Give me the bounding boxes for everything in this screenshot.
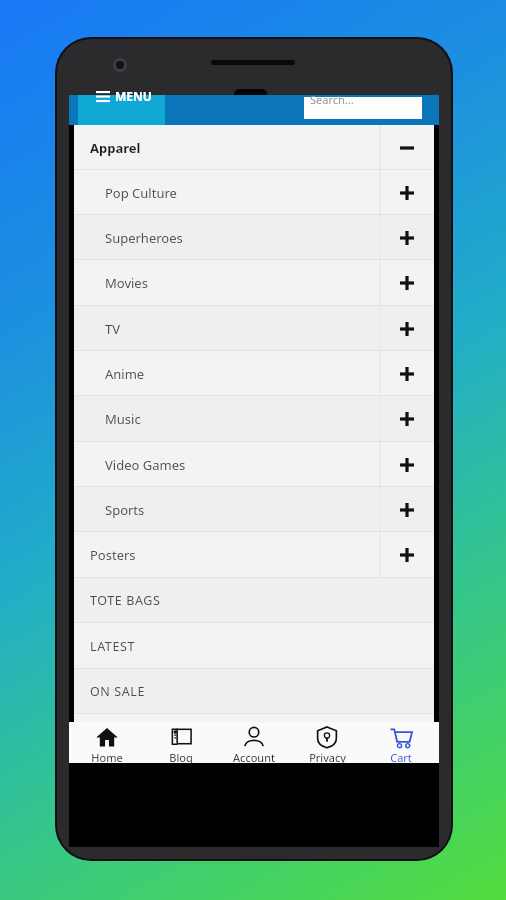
staticText: Posters <box>90 546 136 564</box>
button[interactable]: Expand Music <box>379 396 434 442</box>
button[interactable]: Privacy <box>292 722 362 763</box>
button[interactable]: Music <box>74 396 434 442</box>
staticText: Sports <box>105 501 145 519</box>
button[interactable]: Expand Anime <box>379 351 434 396</box>
staticText: TV <box>105 320 121 338</box>
button[interactable]: Expand Movies <box>379 260 434 306</box>
button[interactable]: Sports <box>74 487 434 532</box>
staticText: Cart <box>390 750 412 763</box>
staticText: TOTE BAGS <box>90 592 161 609</box>
button[interactable]: Expand Pop Culture <box>379 170 434 215</box>
button[interactable]: Anime <box>74 351 434 396</box>
button[interactable]: LATEST <box>74 623 434 669</box>
staticText: LATEST <box>90 638 135 655</box>
button[interactable]: Blog <box>146 722 216 763</box>
staticText: Privacy <box>309 750 346 763</box>
staticText: Blog <box>169 750 193 763</box>
button[interactable]: Superheroes <box>74 215 434 260</box>
staticText: Video Games <box>105 456 186 474</box>
button[interactable]: Expand TV <box>379 306 434 351</box>
button[interactable]: Expand Superheroes <box>379 215 434 260</box>
button[interactable]: Account <box>219 722 289 763</box>
button[interactable]: TV <box>74 306 434 351</box>
staticText: Anime <box>105 365 145 383</box>
button[interactable]: Expand Sports <box>379 487 434 532</box>
staticText: Movies <box>105 274 148 292</box>
staticText: Apparel <box>90 139 141 157</box>
staticText: Search... <box>310 92 354 107</box>
staticText: MENU <box>115 88 152 104</box>
button[interactable]: Pop Culture <box>74 170 434 215</box>
button[interactable]: Video Games <box>74 442 434 487</box>
button[interactable]: Home <box>72 722 142 763</box>
button[interactable]: TOTE BAGS <box>74 578 434 623</box>
button[interactable]: Collapse Apparel <box>379 125 434 170</box>
button[interactable]: Apparel <box>74 125 434 170</box>
staticText: Pop Culture <box>105 184 177 202</box>
button[interactable]: ON SALE <box>74 669 434 714</box>
button[interactable]: Search <box>304 97 422 119</box>
button[interactable]: Cart <box>366 722 436 763</box>
button[interactable]: Posters <box>74 532 434 578</box>
button[interactable]: Open menu <box>78 95 165 125</box>
button[interactable]: Expand Posters <box>379 532 434 578</box>
staticText: Account <box>233 750 275 763</box>
staticText: ON SALE <box>90 683 146 700</box>
staticText: Home <box>91 750 123 763</box>
button[interactable]: Movies <box>74 260 434 306</box>
staticText: Music <box>105 410 141 428</box>
staticText: Superheroes <box>105 229 183 247</box>
button[interactable]: Expand Video Games <box>379 442 434 487</box>
